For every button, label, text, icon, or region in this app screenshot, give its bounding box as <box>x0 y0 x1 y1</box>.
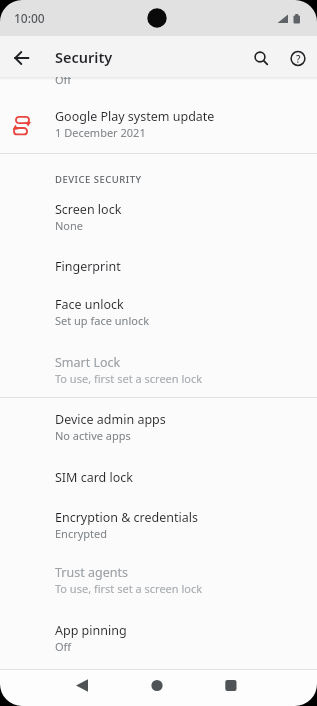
staticText: ? <box>296 52 301 66</box>
staticText: DEVICE SECURITY <box>55 173 142 186</box>
button[interactable]: Face unlock <box>0 285 317 342</box>
staticText: Smart Lock <box>55 354 121 371</box>
staticText: 1 December 2021 <box>55 125 146 140</box>
button[interactable]: Device admin apps <box>0 398 317 457</box>
staticText: To use, first set a screen lock <box>55 581 203 596</box>
button[interactable]: ? <box>283 43 313 73</box>
staticText: No active apps <box>55 428 131 443</box>
button[interactable] <box>0 669 105 706</box>
button[interactable]: SIM card lock <box>0 457 317 496</box>
staticText: Device admin apps <box>55 411 166 428</box>
staticText: SIM card lock <box>55 469 134 486</box>
staticText: 10:00 <box>14 10 45 26</box>
button[interactable] <box>211 669 317 706</box>
button[interactable]: Screen lock <box>0 189 317 246</box>
staticText: Screen lock <box>55 201 122 218</box>
staticText: Set up face unlock <box>55 313 150 328</box>
staticText: Encrypted <box>55 526 108 541</box>
button[interactable]: Trust agents <box>0 553 317 609</box>
staticText: Fingerprint <box>55 258 121 275</box>
staticText: Face unlock <box>55 296 124 313</box>
staticText: App pinning <box>55 622 127 639</box>
button[interactable]: Encryption & credentials <box>0 496 317 553</box>
button[interactable]: Smart Lock <box>0 342 317 397</box>
button[interactable] <box>0 36 41 77</box>
staticText: Security <box>55 47 113 67</box>
staticText: Off <box>55 639 72 654</box>
button[interactable] <box>105 669 211 706</box>
staticText: None <box>55 218 84 233</box>
button[interactable]: Fingerprint <box>0 246 317 285</box>
staticText: Google Play system update <box>55 108 215 125</box>
staticText: Encryption & credentials <box>55 509 198 526</box>
button[interactable]: App pinning <box>0 609 317 667</box>
button[interactable] <box>245 43 275 73</box>
staticText: Trust agents <box>55 564 128 581</box>
staticText: Off <box>55 77 72 87</box>
staticText: To use, first set a screen lock <box>55 371 203 386</box>
button[interactable]: Google Play system update <box>0 96 317 153</box>
